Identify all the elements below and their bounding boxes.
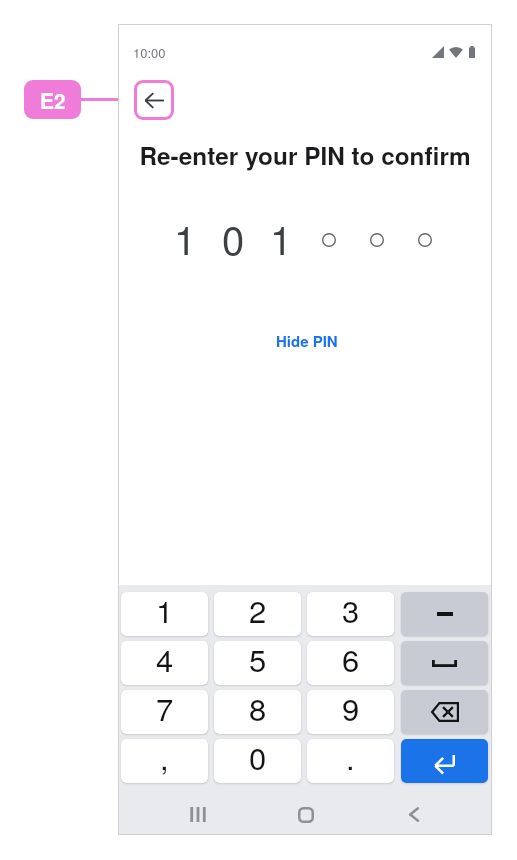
staticText: 0 — [222, 209, 245, 266]
staticText: 7 — [156, 690, 174, 729]
button[interactable]: Space — [401, 641, 488, 685]
button[interactable]: 0 — [214, 739, 301, 783]
button[interactable]: Home — [269, 794, 343, 835]
staticText: E2 — [40, 85, 66, 115]
button[interactable]: 5 — [214, 641, 301, 685]
button[interactable]: , — [121, 739, 208, 783]
staticText: 6 — [342, 641, 360, 680]
button[interactable]: 6 — [307, 641, 394, 685]
staticText: 4 — [156, 641, 174, 680]
staticText: 9 — [342, 690, 360, 729]
button[interactable]: Hide PIN — [270, 326, 344, 355]
button[interactable]: 4 — [121, 641, 208, 685]
button[interactable]: 2 — [214, 592, 301, 636]
button[interactable]: 1 — [121, 592, 208, 636]
staticText: 1 — [174, 209, 197, 266]
staticText: Hide PIN — [276, 330, 338, 351]
button[interactable]: Back — [134, 80, 174, 120]
staticText: 3 — [342, 592, 360, 631]
button[interactable]: 3 — [307, 592, 394, 636]
staticText: 2 — [249, 592, 267, 631]
button[interactable]: Enter — [401, 739, 488, 783]
staticText: , — [160, 739, 169, 778]
button[interactable]: Backspace — [401, 690, 488, 734]
button[interactable]: . — [307, 739, 394, 783]
staticText: 1 — [156, 592, 174, 631]
staticText: 1 — [270, 209, 293, 266]
button[interactable]: 7 — [121, 690, 208, 734]
staticText: 10:00 — [133, 43, 166, 62]
button[interactable]: Recents — [161, 794, 235, 835]
button[interactable]: Back — [376, 794, 450, 835]
staticText: . — [346, 739, 355, 778]
staticText: Re-enter your PIN to confirm — [118, 138, 492, 173]
staticText: 8 — [249, 690, 267, 729]
button[interactable]: 9 — [307, 690, 394, 734]
staticText: 0 — [249, 739, 267, 778]
staticText: 5 — [249, 641, 267, 680]
button[interactable]: 8 — [214, 690, 301, 734]
button[interactable]: Minus — [401, 592, 488, 636]
